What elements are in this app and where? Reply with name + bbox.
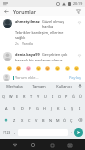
button[interactable]: Emoji 0	[6, 65, 12, 71]
button[interactable]: Paylaş	[68, 75, 82, 80]
button[interactable]: L	[62, 102, 69, 114]
button[interactable]: Emoji 2	[25, 65, 31, 71]
button[interactable]: .	[69, 126, 74, 138]
button[interactable]: W	[7, 90, 14, 102]
staticText: K	[57, 106, 60, 111]
button[interactable]: Gönder	[74, 128, 83, 137]
button[interactable]: Emoji 4	[44, 65, 50, 71]
staticText: ahmetyilmaz	[15, 19, 40, 24]
button[interactable]: Yanıtla	[22, 41, 33, 46]
staticText: .	[71, 129, 73, 135]
staticText: O	[58, 94, 62, 99]
staticText: G	[36, 106, 39, 111]
button[interactable]: Kullanıcı	[51, 84, 76, 89]
button[interactable]: ahmetyilmaz	[0, 16, 85, 49]
button[interactable]: G	[34, 102, 41, 114]
button[interactable]: Emoji 5	[54, 65, 60, 71]
button[interactable]: Filtrele	[75, 8, 82, 15]
button[interactable]: Shift	[1, 114, 10, 126]
button[interactable]: B	[40, 114, 47, 126]
staticText: Y	[37, 94, 40, 99]
button[interactable]: K	[55, 102, 62, 114]
button[interactable]: Klavyeyi gizle	[66, 141, 74, 149]
button[interactable]: Emoji 3	[35, 65, 41, 71]
button[interactable]: O	[56, 90, 63, 102]
button[interactable]: C	[26, 114, 33, 126]
button[interactable]: H	[41, 102, 48, 114]
staticText: 2s	[15, 41, 19, 46]
button[interactable]: Q	[1, 90, 7, 102]
staticText: ?123	[3, 130, 11, 135]
staticText: Q	[2, 94, 6, 99]
staticText: 20:19	[73, 1, 83, 6]
button[interactable]: J	[48, 102, 55, 114]
staticText: J	[51, 106, 53, 111]
staticText: Ü	[79, 94, 82, 99]
staticText: I	[79, 106, 81, 111]
button[interactable]: Sesle yaz	[76, 84, 83, 88]
button[interactable]: M	[54, 114, 61, 126]
button[interactable]: S	[10, 102, 18, 114]
staticText: H	[43, 106, 46, 111]
button[interactable]: deniz.kaya99	[0, 49, 85, 64]
button[interactable]: E	[14, 90, 21, 102]
button[interactable]: Ğ	[70, 90, 77, 102]
staticText: U	[44, 94, 47, 99]
button[interactable]: Ş	[69, 102, 76, 114]
button[interactable]: ,	[12, 126, 17, 138]
staticText: Tebrikler kardeşim, ellerine sağlık	[15, 30, 74, 40]
button[interactable]: N	[47, 114, 54, 126]
button[interactable]: Y	[35, 90, 42, 102]
button[interactable]: Ç	[68, 114, 75, 126]
staticText: Paylaş	[69, 75, 81, 80]
staticText: X	[21, 118, 24, 123]
button[interactable]: Geri	[11, 141, 19, 149]
button[interactable]: Beğen	[76, 19, 82, 25]
staticText: Z	[13, 118, 16, 123]
button[interactable]: Emoji 1	[15, 65, 21, 71]
button[interactable]: I	[76, 102, 83, 114]
button[interactable]: Geri	[3, 8, 10, 15]
button[interactable]: Beğen	[76, 52, 82, 58]
button[interactable]: Z	[10, 114, 18, 126]
button[interactable]: Yorum ekle...	[13, 75, 68, 80]
staticText: başarılı bir paylaşım olmuş, devamını be…	[15, 58, 74, 61]
staticText: Ö	[63, 118, 67, 123]
button[interactable]: Emoji 7	[73, 65, 79, 71]
button[interactable]: Ö	[61, 114, 68, 126]
button[interactable]: Tamam	[26, 84, 51, 89]
button[interactable]: A	[2, 102, 10, 114]
staticText: E	[16, 94, 19, 99]
button[interactable]: Ana ekran	[29, 141, 37, 149]
button[interactable]: R	[21, 90, 28, 102]
button[interactable]: P	[63, 90, 70, 102]
button[interactable]: ?123	[2, 126, 12, 138]
button[interactable]: T	[28, 90, 35, 102]
button[interactable]: U	[42, 90, 49, 102]
staticText: V	[35, 118, 38, 123]
button[interactable]: Merhaba	[2, 84, 26, 89]
staticText: L	[64, 106, 67, 111]
staticText: ,	[14, 129, 16, 135]
button[interactable]: F	[26, 102, 34, 114]
button[interactable]: Ü	[77, 90, 84, 102]
button[interactable]: I	[49, 90, 56, 102]
staticText: Merhaba	[6, 84, 23, 89]
staticText: N	[49, 118, 52, 123]
staticText: S	[13, 106, 16, 111]
staticText: T	[30, 94, 33, 99]
button[interactable]: V	[33, 114, 40, 126]
staticText: Ğ	[72, 94, 75, 99]
staticText: Yanıtla	[22, 41, 33, 46]
button[interactable]: Son uygulamalar	[48, 141, 56, 149]
staticText: Kullanıcı	[56, 84, 72, 89]
button[interactable]: Sil	[75, 114, 84, 126]
button[interactable]: D	[18, 102, 26, 114]
staticText: C	[28, 118, 31, 123]
button[interactable]: Emoji 6	[64, 65, 70, 71]
staticText: D	[21, 106, 24, 111]
button[interactable]: X	[18, 114, 26, 126]
staticText: A	[5, 106, 8, 111]
staticText: Tamam	[32, 84, 46, 89]
